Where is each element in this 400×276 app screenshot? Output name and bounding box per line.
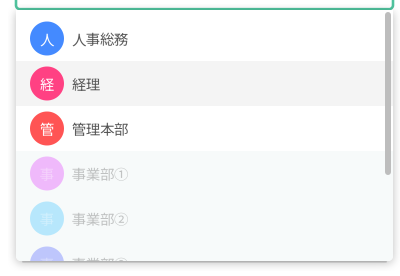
staticText: 経 bbox=[40, 73, 54, 94]
button[interactable]: 事 bbox=[16, 196, 393, 241]
staticText: 経理 bbox=[72, 73, 100, 94]
staticText: 管 bbox=[40, 118, 54, 139]
staticText: 事 bbox=[40, 208, 54, 229]
staticText: 人 bbox=[40, 28, 54, 49]
button[interactable]: 事 bbox=[16, 241, 393, 276]
button[interactable]: 経 bbox=[16, 61, 393, 106]
staticText: 事 bbox=[40, 253, 54, 274]
staticText: 人事総務 bbox=[72, 28, 128, 49]
staticText: 事業部② bbox=[72, 208, 128, 229]
button[interactable]: 管 bbox=[16, 106, 393, 151]
staticText: 事業部③ bbox=[72, 253, 128, 274]
staticText: 事業部① bbox=[72, 163, 128, 184]
button[interactable]: 事 bbox=[16, 151, 393, 196]
staticText: 事 bbox=[40, 163, 54, 184]
button[interactable]: 人 bbox=[16, 16, 393, 61]
staticText: 管理本部 bbox=[72, 118, 128, 139]
